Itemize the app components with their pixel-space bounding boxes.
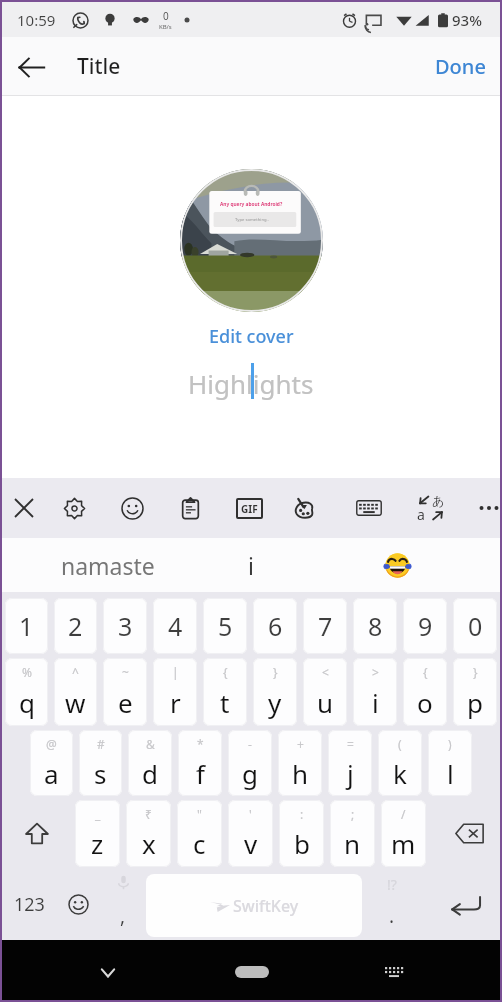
- staticText: 10:59: [17, 10, 56, 30]
- button[interactable]: {: [203, 658, 247, 726]
- button[interactable]: Emoji: [57, 869, 99, 940]
- button[interactable]: 4: [153, 598, 197, 654]
- staticText: o: [417, 685, 433, 720]
- staticText: Type something..: [235, 217, 269, 223]
- button[interactable]: 6: [253, 598, 297, 654]
- staticText: b: [294, 826, 310, 861]
- button[interactable]: _: [75, 800, 120, 867]
- staticText: &: [146, 736, 155, 752]
- button[interactable]: 0: [453, 598, 497, 654]
- staticText: 123: [14, 892, 45, 917]
- button[interactable]: ": [177, 800, 222, 867]
- button[interactable]: ~: [103, 658, 147, 726]
- staticText: v: [244, 826, 258, 861]
- button[interactable]: =: [328, 730, 372, 796]
- button[interactable]: 3: [103, 598, 147, 654]
- staticText: m: [391, 826, 416, 861]
- staticText: |: [172, 664, 179, 680]
- staticText: t: [220, 685, 230, 720]
- staticText: ;: [351, 806, 355, 822]
- button[interactable]: @: [30, 730, 73, 796]
- button[interactable]: :: [279, 800, 324, 867]
- button[interactable]: trans: [404, 478, 458, 538]
- button[interactable]: #: [79, 730, 122, 796]
- button[interactable]: %: [5, 658, 48, 726]
- staticText: (: [398, 736, 402, 752]
- button[interactable]: ': [228, 800, 273, 867]
- button[interactable]: 9: [403, 598, 447, 654]
- staticText: ~: [122, 664, 129, 680]
- staticText: >: [372, 664, 379, 680]
- button[interactable]: |: [153, 658, 197, 726]
- staticText: Title: [77, 52, 121, 81]
- button[interactable]: laughing emoji: [357, 538, 437, 592]
- staticText: l: [447, 756, 454, 791]
- button[interactable]: Done: [417, 37, 500, 96]
- button[interactable]: Punctuation: [370, 869, 414, 940]
- staticText: h: [292, 756, 309, 791]
- button[interactable]: Switch keyboard: [373, 960, 415, 984]
- button[interactable]: /: [381, 800, 426, 867]
- button[interactable]: &: [128, 730, 172, 796]
- staticText: 9: [418, 609, 433, 643]
- button[interactable]: *: [178, 730, 222, 796]
- button[interactable]: clip: [163, 478, 217, 538]
- staticText: %: [22, 664, 32, 680]
- button[interactable]: 5: [203, 598, 247, 654]
- button[interactable]: {: [403, 658, 447, 726]
- staticText: d: [142, 756, 158, 791]
- button[interactable]: shift: [2, 798, 72, 869]
- button[interactable]: Back: [2, 38, 60, 96]
- button[interactable]: }: [253, 658, 297, 726]
- button[interactable]: >: [353, 658, 397, 726]
- staticText: p: [467, 685, 483, 720]
- staticText: y: [268, 685, 282, 720]
- button[interactable]: i: [186, 538, 316, 592]
- button[interactable]: <: [303, 658, 347, 726]
- staticText: 5: [218, 609, 233, 643]
- staticText: あ: [432, 493, 445, 508]
- button[interactable]: +: [278, 730, 322, 796]
- staticText: /: [401, 806, 406, 822]
- button[interactable]: ^: [54, 658, 97, 726]
- button[interactable]: -: [228, 730, 272, 796]
- staticText: {: [223, 664, 228, 680]
- staticText: i: [372, 685, 379, 720]
- button[interactable]: Space: [146, 874, 362, 937]
- button[interactable]: Edit cover: [201, 321, 302, 352]
- button[interactable]: 123: [2, 869, 57, 940]
- staticText: Done: [435, 53, 486, 80]
- button[interactable]: namaste: [24, 538, 192, 592]
- staticText: Edit cover: [209, 324, 294, 349]
- button[interactable]: kbd: [342, 478, 396, 538]
- button[interactable]: more: [462, 478, 502, 538]
- staticText: 4: [168, 609, 183, 643]
- staticText: ^: [72, 664, 79, 680]
- staticText: :: [300, 806, 304, 822]
- button[interactable]: 8: [353, 598, 397, 654]
- button[interactable]: Hide keyboard: [87, 960, 129, 984]
- button[interactable]: ;: [330, 800, 375, 867]
- button[interactable]: 1: [5, 598, 48, 654]
- staticText: k: [393, 756, 407, 791]
- button[interactable]: ₹: [126, 800, 171, 867]
- button[interactable]: sticker: [277, 478, 331, 538]
- staticText: KB/s: [159, 23, 172, 31]
- button[interactable]: emoji: [105, 478, 159, 538]
- button[interactable]: Voice input and comma: [101, 869, 145, 940]
- button[interactable]: 2: [54, 598, 97, 654]
- button[interactable]: settings: [47, 478, 101, 538]
- button[interactable]: ): [428, 730, 472, 796]
- staticText: f: [196, 756, 205, 791]
- button[interactable]: Home: [227, 960, 277, 984]
- button[interactable]: Enter: [434, 869, 496, 940]
- button[interactable]: close: [0, 478, 51, 538]
- staticText: r: [170, 685, 181, 720]
- button[interactable]: }: [453, 658, 497, 726]
- button[interactable]: 7: [303, 598, 347, 654]
- button[interactable]: backspace: [429, 798, 500, 869]
- button[interactable]: gif: [222, 478, 276, 538]
- button[interactable]: Cover photo: [180, 169, 323, 312]
- button[interactable]: (: [378, 730, 422, 796]
- staticText: @: [46, 736, 57, 752]
